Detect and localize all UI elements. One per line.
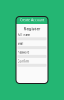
staticText: Password bbox=[17, 51, 29, 54]
staticText: Create Account bbox=[20, 18, 44, 22]
staticText: Email bbox=[17, 42, 23, 45]
staticText: Confirm bbox=[17, 59, 28, 63]
staticText: Register bbox=[23, 26, 40, 31]
staticText: Full name bbox=[17, 33, 30, 37]
